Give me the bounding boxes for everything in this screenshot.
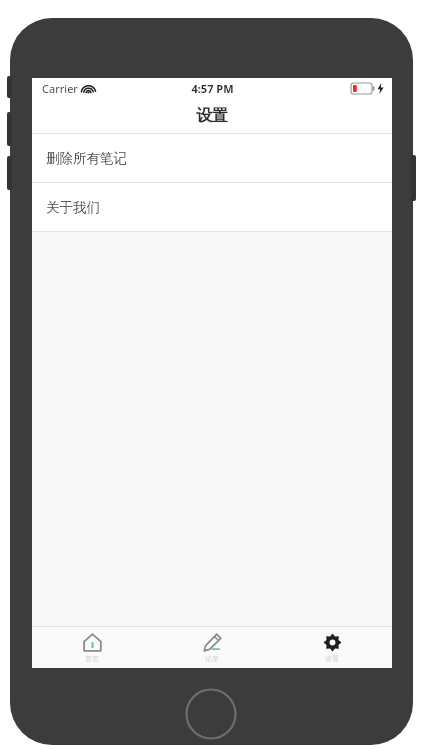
button[interactable]: Records bbox=[152, 627, 272, 668]
staticText: 关于我们 bbox=[46, 199, 100, 216]
button[interactable]: 删除所有笔记 bbox=[32, 134, 392, 182]
staticText: 首页 bbox=[85, 654, 99, 663]
staticText: 4:57 PM bbox=[191, 81, 234, 96]
staticText: Carrier bbox=[42, 81, 78, 96]
button[interactable]: 关于我们 bbox=[32, 183, 392, 231]
button[interactable]: Settings bbox=[272, 627, 392, 668]
button[interactable]: Home bbox=[32, 627, 152, 668]
staticText: 删除所有笔记 bbox=[46, 150, 127, 167]
staticText: 设置 bbox=[325, 654, 339, 663]
staticText: 设置 bbox=[196, 106, 228, 126]
staticText: 记录 bbox=[205, 654, 219, 663]
